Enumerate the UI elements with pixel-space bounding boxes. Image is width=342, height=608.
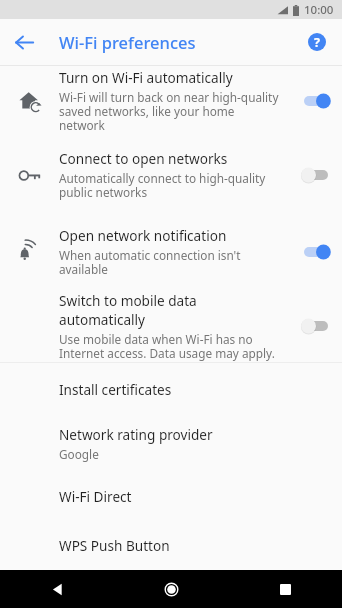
button[interactable]: Turn on Wi-Fi automatically — [0, 66, 342, 136]
button[interactable]: Navigate up — [6, 24, 42, 60]
button[interactable]: Network rating provider — [0, 415, 342, 471]
button[interactable]: On — [290, 214, 342, 290]
button[interactable]: Home — [114, 570, 228, 608]
button[interactable]: Install certificates — [0, 363, 342, 415]
staticText: WPS Push Button — [59, 536, 170, 555]
button[interactable]: Open network notification — [0, 214, 342, 290]
button[interactable]: Help — [300, 25, 334, 59]
button[interactable]: Off — [290, 290, 342, 362]
button[interactable]: Off — [290, 136, 342, 214]
staticText: Wi-Fi preferences — [59, 31, 196, 53]
button[interactable]: Back — [0, 570, 114, 608]
button[interactable]: Wi-Fi Direct — [0, 471, 342, 521]
staticText: Switch to mobile data automatically — [59, 291, 282, 329]
staticText: ? — [314, 34, 320, 51]
staticText: Network rating provider — [59, 425, 213, 444]
staticText: Connect to open networks — [59, 149, 228, 168]
button[interactable]: Recent apps — [228, 570, 342, 608]
staticText: When automatic connection isn't availabl… — [59, 247, 241, 278]
staticText: 10:00 — [304, 2, 334, 18]
staticText: Turn on Wi-Fi automatically — [59, 68, 233, 87]
button[interactable]: Switch to mobile data automatically — [0, 290, 342, 362]
button[interactable]: WPS Push Button — [0, 521, 342, 570]
staticText: Use mobile data when Wi-Fi has no Intern… — [59, 331, 275, 362]
staticText: Wi-Fi will turn back on near high-qualit… — [59, 89, 282, 134]
button[interactable]: On — [290, 66, 342, 136]
staticText: Google — [59, 446, 99, 462]
staticText: Automatically connect to high-quality pu… — [59, 170, 266, 201]
staticText: Install certificates — [59, 380, 172, 399]
button[interactable]: Connect to open networks — [0, 136, 342, 214]
staticText: Wi-Fi Direct — [59, 487, 132, 506]
staticText: Open network notification — [59, 226, 227, 245]
